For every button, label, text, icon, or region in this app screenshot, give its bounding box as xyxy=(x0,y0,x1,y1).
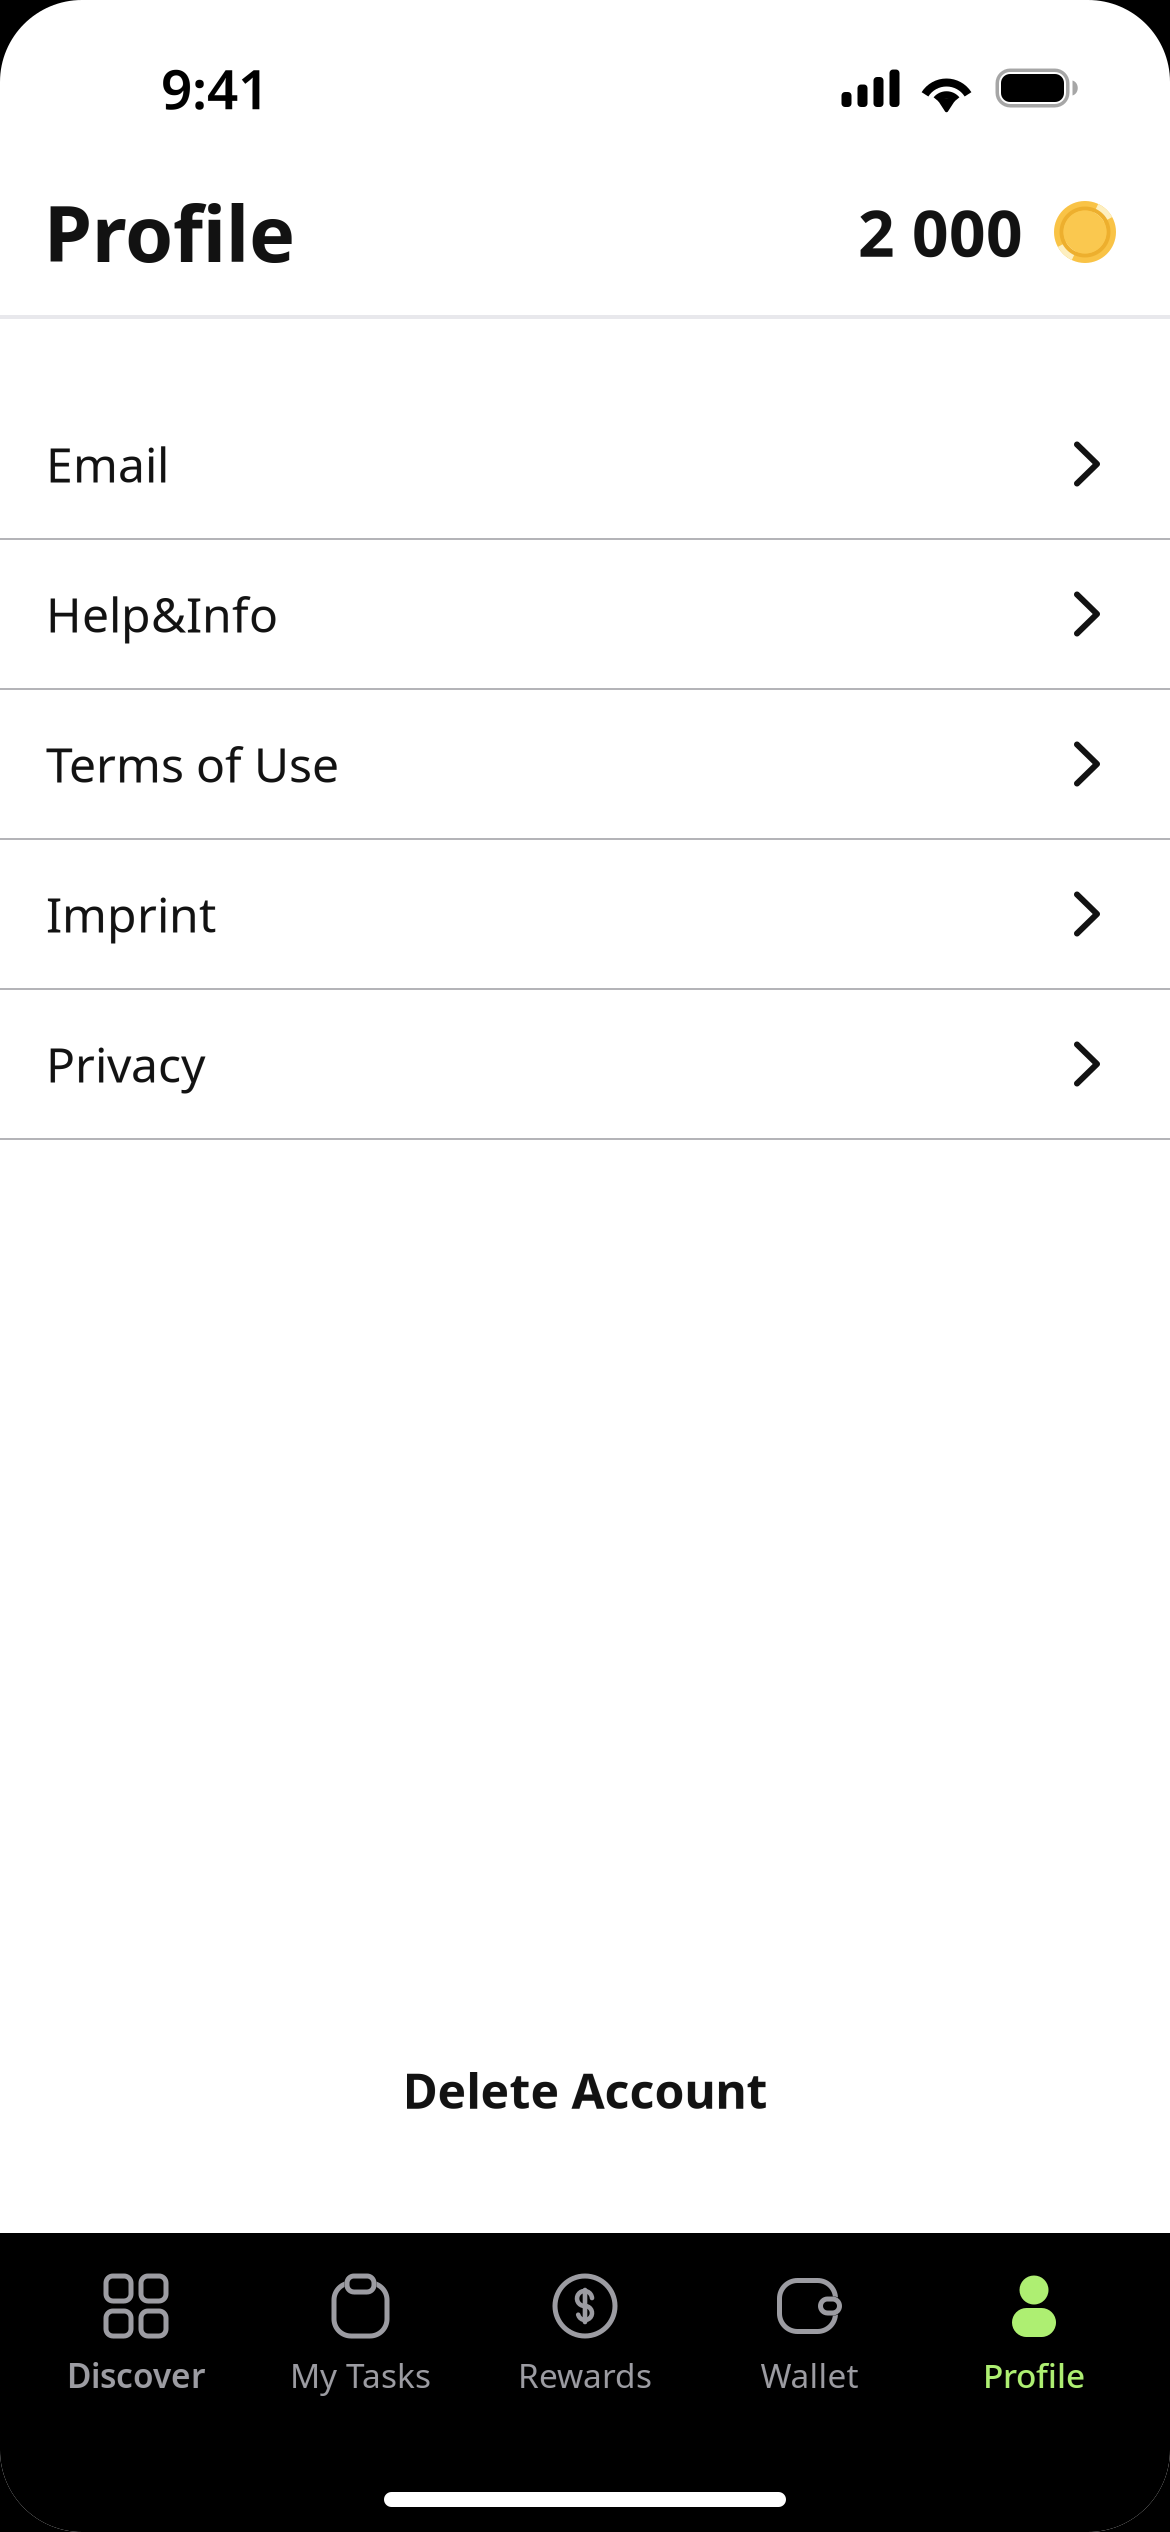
staticText: My Tasks xyxy=(290,2353,431,2397)
button[interactable]: Imprint xyxy=(0,840,1170,990)
staticText: Email xyxy=(46,432,169,496)
staticText: Rewards xyxy=(518,2353,652,2397)
staticText: Help&Info xyxy=(46,582,278,646)
staticText: Imprint xyxy=(46,882,216,946)
staticText: 2 000 xyxy=(858,189,1023,274)
button[interactable]: Help&Info xyxy=(0,540,1170,690)
staticText: Discover xyxy=(67,2353,205,2397)
staticText: Wallet xyxy=(760,2353,858,2397)
staticText: Privacy xyxy=(46,1032,205,1096)
button[interactable]: Privacy xyxy=(0,990,1170,1140)
staticText: Profile xyxy=(983,2353,1085,2397)
button[interactable]: My Tasks xyxy=(248,2274,473,2397)
staticText: Delete Account xyxy=(402,2058,767,2122)
staticText: Profile xyxy=(44,181,295,283)
button[interactable]: Profile xyxy=(922,2274,1146,2397)
button[interactable]: Rewards xyxy=(473,2274,697,2397)
button[interactable]: Discover xyxy=(24,2274,248,2397)
button[interactable]: Delete Account xyxy=(0,2028,1170,2152)
button[interactable]: Wallet xyxy=(697,2274,922,2397)
button[interactable]: 2 000 xyxy=(858,189,1116,274)
staticText: 9:41 xyxy=(161,52,269,124)
staticText: Terms of Use xyxy=(46,732,339,796)
button[interactable]: Terms of Use xyxy=(0,690,1170,840)
button[interactable]: Email xyxy=(0,390,1170,540)
